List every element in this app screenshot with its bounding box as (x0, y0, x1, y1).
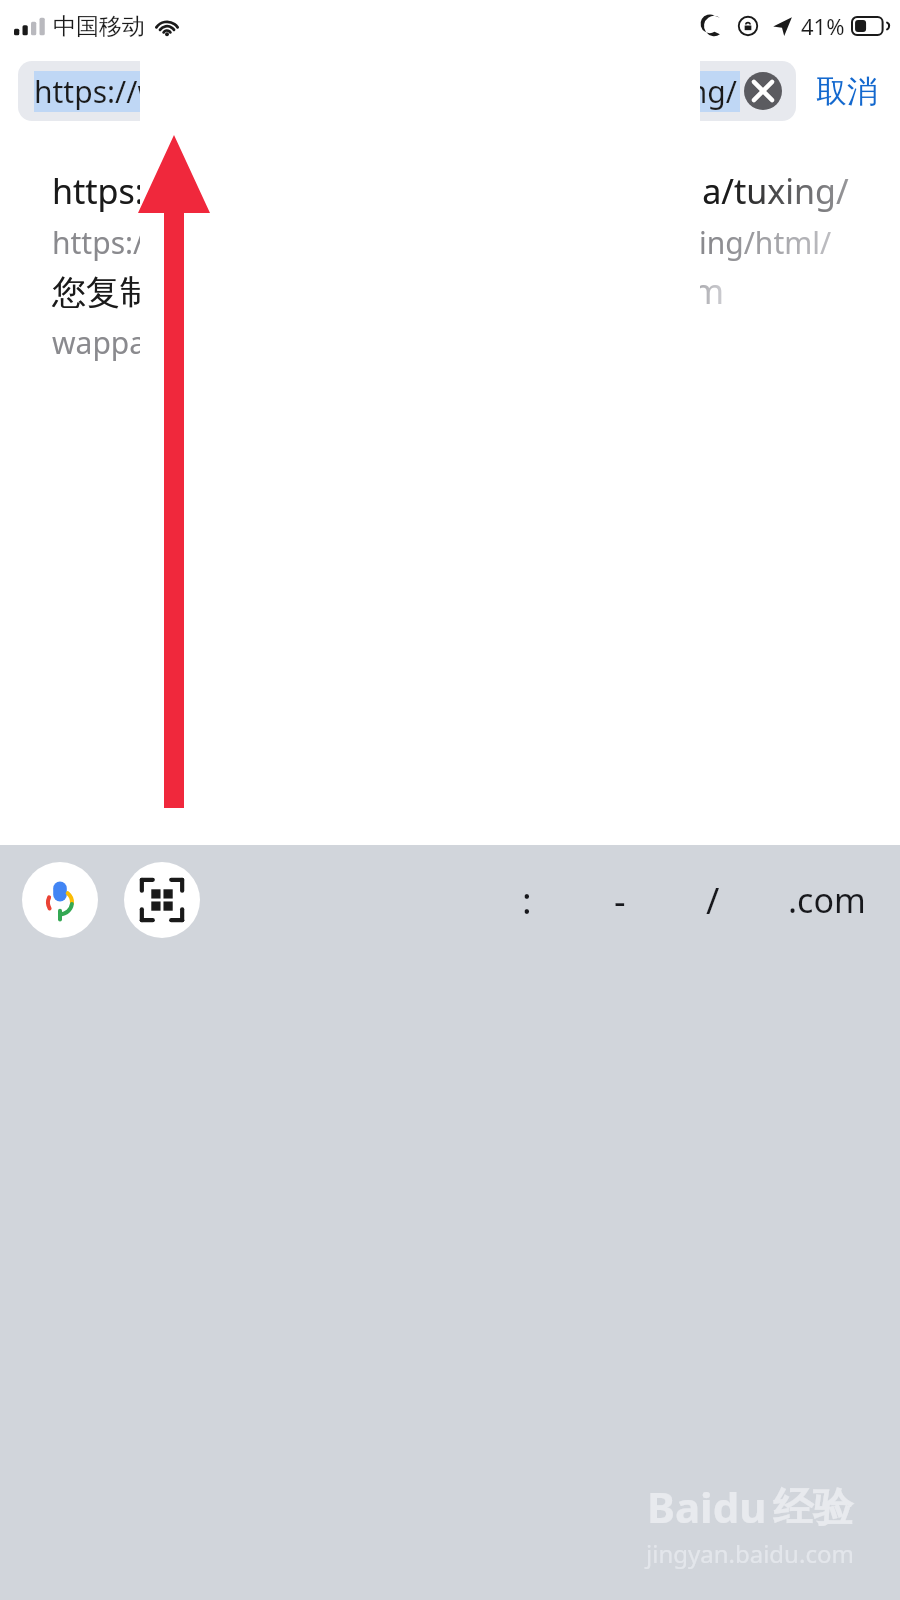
staticText: 41% (801, 11, 845, 41)
staticText: wappass.baidu.com/static/?https%3A%2F%2F (52, 322, 692, 363)
staticText: - (614, 876, 626, 925)
button[interactable]: Clear text (740, 68, 786, 114)
button[interactable]: Voice search (22, 862, 98, 938)
staticText: 您复制的链接：https://wappass.baidu.com (52, 268, 725, 314)
staticText: https://wappass.baidu.com/static/captcha… (52, 222, 900, 263)
button[interactable]: .com (778, 863, 876, 937)
button[interactable]: https://wappass.baidu.com/static/captcha… (18, 61, 796, 121)
staticText: 取消 (816, 72, 878, 111)
staticText: : (522, 876, 532, 925)
button[interactable]: Scan code (124, 862, 200, 938)
button[interactable]: : (512, 862, 542, 939)
button[interactable]: - (604, 862, 636, 939)
staticText: jingyan.baidu.com (646, 1537, 854, 1570)
button[interactable]: / (696, 862, 730, 939)
staticText: 经验 (773, 1482, 853, 1532)
staticText: Baidu (647, 1478, 767, 1535)
staticText: 中国移动 (53, 12, 145, 41)
button[interactable]: 您复制的链接：https://wappass.baidu.com (0, 268, 900, 364)
button[interactable]: https://wappass.baidu.com/static/captcha… (0, 168, 900, 264)
staticText: / (706, 876, 720, 925)
staticText: https://wappass.baidu.com/static/captcha… (52, 168, 900, 214)
staticText: .com (788, 877, 866, 923)
button[interactable]: 取消 (812, 64, 882, 119)
staticText: https://wappass.baidu.com/static/captcha… (34, 71, 740, 112)
